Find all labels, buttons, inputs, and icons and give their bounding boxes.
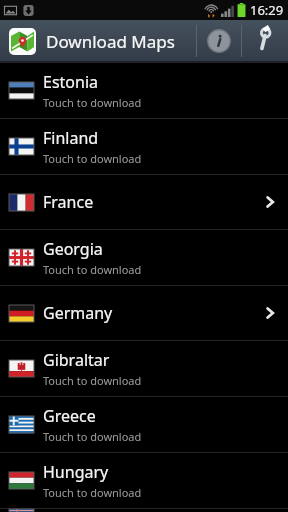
staticText: 16:29	[250, 1, 284, 19]
button[interactable]: Georgia	[0, 230, 288, 285]
staticText: Germany	[43, 302, 113, 324]
staticText: Touch to download	[43, 95, 142, 110]
button[interactable]: France	[0, 175, 288, 229]
staticText: Estonia	[43, 71, 99, 93]
staticText: Touch to download	[43, 262, 142, 277]
button[interactable]: Settings	[242, 20, 286, 62]
button[interactable]: App icon, up	[9, 28, 36, 55]
staticText: Download Maps	[46, 30, 175, 53]
staticText: Touch to download	[43, 373, 142, 388]
staticText: Georgia	[43, 238, 103, 260]
staticText: France	[43, 191, 94, 213]
button[interactable]: Information	[197, 20, 241, 62]
button[interactable]: Germany	[0, 286, 288, 340]
staticText: Touch to download	[43, 485, 142, 500]
button[interactable]: Finland	[0, 119, 288, 174]
button[interactable]: Estonia	[0, 63, 288, 118]
staticText: Gibraltar	[43, 349, 110, 371]
button[interactable]: Hungary	[0, 453, 288, 508]
button[interactable]: Gibraltar	[0, 341, 288, 396]
staticText: Touch to download	[43, 429, 142, 444]
staticText: Touch to download	[43, 151, 142, 166]
staticText: Hungary	[43, 461, 109, 483]
staticText: Greece	[43, 405, 96, 427]
staticText: Finland	[43, 127, 99, 149]
button[interactable]: Greece	[0, 397, 288, 452]
button[interactable]: Iceland	[0, 509, 288, 512]
